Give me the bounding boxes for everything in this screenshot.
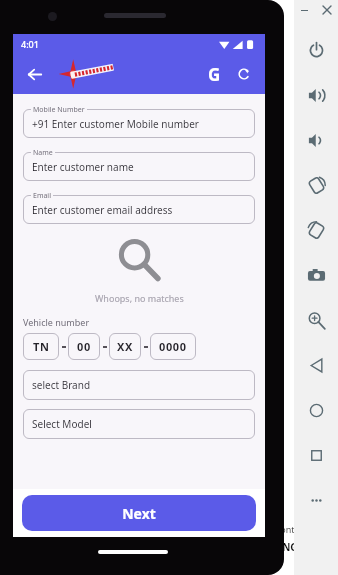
staticText: PNG. (276, 540, 301, 554)
staticText: G (208, 63, 221, 86)
button[interactable]: select Brand (23, 370, 255, 400)
staticText: Select Model (32, 417, 92, 431)
button[interactable]: 00 (68, 333, 100, 360)
button[interactable]: Minimize (299, 5, 309, 15)
button[interactable]: Volume up (294, 73, 338, 118)
staticText: Email (33, 191, 51, 201)
button[interactable]: Rotate left (294, 163, 338, 208)
staticText: TN (33, 339, 50, 354)
staticText: Name (33, 148, 53, 158)
staticText: Enter customer email address (32, 203, 173, 217)
button[interactable]: Enter customer email address (23, 195, 255, 224)
button[interactable]: Back (294, 343, 338, 388)
button[interactable]: Volume down (294, 118, 338, 163)
staticText: 4:01 (21, 38, 39, 50)
button[interactable]: Rotate right (294, 208, 338, 253)
button[interactable]: Close (321, 4, 333, 16)
staticText: 00 (77, 339, 91, 354)
staticText: Next (122, 504, 156, 523)
staticText: Enter customer name (32, 160, 134, 174)
button[interactable]: Refresh (231, 61, 257, 87)
button[interactable]: Select Model (23, 409, 255, 439)
staticText: +91 Enter customer Mobile number (32, 117, 199, 131)
button[interactable]: Back (19, 59, 49, 89)
button[interactable]: Power (294, 28, 338, 73)
button[interactable]: XX (109, 333, 141, 360)
staticText: select Brand (32, 378, 91, 392)
button[interactable]: Overview (294, 433, 338, 478)
button[interactable]: Screenshot (294, 253, 338, 298)
button[interactable]: Next (22, 495, 256, 531)
staticText: Whoops, no matches (95, 292, 184, 304)
staticText: 0000 (159, 339, 187, 354)
button[interactable]: Home (294, 388, 338, 433)
button[interactable]: 0000 (150, 333, 196, 360)
button[interactable]: +91 Enter customer Mobile number (23, 109, 255, 138)
button[interactable]: TN (23, 333, 59, 360)
staticText: Vehicle number (23, 316, 90, 328)
button[interactable]: Google (201, 61, 227, 87)
button[interactable]: Enter customer name (23, 152, 255, 181)
button[interactable]: Zoom (294, 298, 338, 343)
button[interactable]: More (294, 478, 338, 523)
staticText: XX (117, 339, 133, 354)
staticText: Mobile Number (33, 105, 85, 115)
staticText: contest he (276, 523, 321, 535)
